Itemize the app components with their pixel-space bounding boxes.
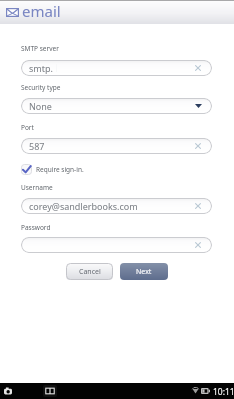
button[interactable]: 587 — [21, 138, 212, 154]
button[interactable]: smtp. — [21, 60, 212, 76]
staticText: Username — [21, 183, 53, 192]
staticText: smtp. — [29, 62, 53, 74]
button[interactable]: Camera — [4, 387, 12, 395]
staticText: Password — [21, 223, 51, 232]
staticText: 10:11 — [213, 386, 234, 398]
staticText: 587 — [29, 140, 45, 152]
staticText: Cancel — [79, 267, 101, 277]
other: Email — [6, 8, 19, 17]
staticText: Security type — [21, 83, 61, 92]
button[interactable]: Clear text — [195, 203, 201, 209]
button[interactable]: corey@sandlerbooks.com — [21, 198, 212, 214]
button[interactable]: Cancel — [66, 263, 113, 280]
staticText: None — [29, 100, 52, 112]
button[interactable]: Next — [120, 263, 168, 280]
button[interactable]: Clear text — [195, 143, 201, 149]
staticText: Next — [136, 267, 152, 277]
button[interactable]: Require sign-in. — [21, 163, 84, 175]
other: Battery — [201, 388, 210, 394]
button[interactable]: None — [21, 98, 212, 114]
button[interactable]: Clear text — [195, 65, 201, 71]
button[interactable]: Open dropdown — [195, 104, 202, 108]
button[interactable]: Clear text — [195, 242, 201, 248]
button[interactable]: Clear text — [21, 237, 212, 253]
staticText: SMTP server — [21, 44, 59, 53]
staticText: Require sign-in. — [36, 165, 84, 174]
staticText: email — [22, 1, 61, 21]
staticText: Port — [21, 123, 34, 132]
button[interactable]: Recent apps — [43, 385, 57, 397]
staticText: corey@sandlerbooks.com — [29, 200, 138, 212]
other: Wi-Fi — [192, 387, 199, 394]
